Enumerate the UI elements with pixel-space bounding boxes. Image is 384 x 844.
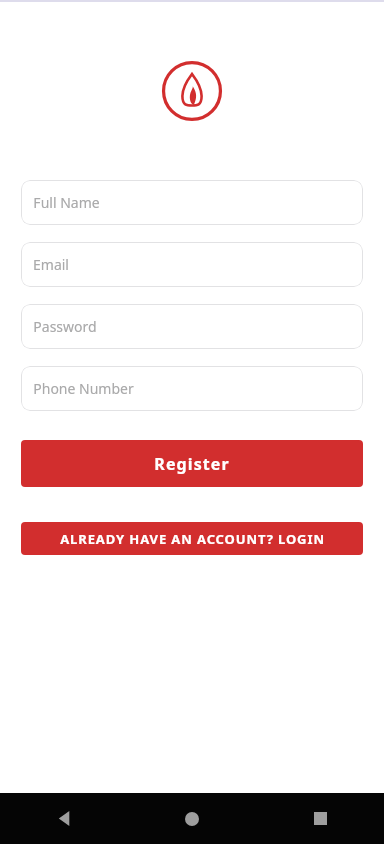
staticText: Phone Number bbox=[33, 379, 134, 398]
staticText: Full Name bbox=[33, 193, 100, 212]
button[interactable]: Home bbox=[128, 793, 256, 844]
button[interactable]: Back bbox=[0, 793, 128, 844]
other: App logo bbox=[161, 60, 223, 122]
button[interactable]: Recent apps bbox=[256, 793, 384, 844]
button[interactable]: Password bbox=[21, 304, 363, 349]
button[interactable]: Email bbox=[21, 242, 363, 287]
staticText: Password bbox=[33, 317, 97, 336]
staticText: Email bbox=[33, 255, 69, 274]
button[interactable]: ALREADY HAVE AN ACCOUNT? LOGIN bbox=[21, 522, 363, 555]
staticText: Register bbox=[154, 453, 230, 475]
button[interactable]: Phone Number bbox=[21, 366, 363, 411]
staticText: ALREADY HAVE AN ACCOUNT? LOGIN bbox=[60, 530, 325, 548]
button[interactable]: Register bbox=[21, 440, 363, 487]
button[interactable]: Full Name bbox=[21, 180, 363, 225]
